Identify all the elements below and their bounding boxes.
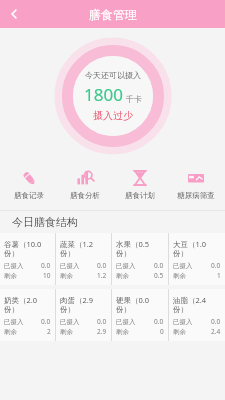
button[interactable]: 肉蛋（2.9份） [56,289,111,341]
button[interactable]: 奶类（2.0份） [0,289,55,341]
staticText: 摄入过少 [93,109,133,122]
staticText: 已摄入 [4,262,24,270]
staticText: 0.5 [154,271,164,280]
staticText: 油脂（2.4份） [173,295,221,314]
staticText: 0 [160,327,164,336]
staticText: 水果（0.5份） [116,239,164,258]
staticText: 已摄入 [116,318,136,326]
staticText: 1.2 [97,271,107,280]
staticText: 0.0 [41,317,51,326]
staticText: 已摄入 [4,318,24,326]
staticText: 膳食管理 [89,7,137,22]
staticText: 2 [47,327,51,336]
button[interactable]: 蔬菜（1.2份） [56,233,111,285]
staticText: 今日膳食结构 [12,215,78,229]
staticText: 剩余 [4,328,17,336]
button[interactable]: 硬果（0.0份） [112,289,168,341]
button[interactable]: 膳食记录 [2,166,56,202]
staticText: 已摄入 [173,318,193,326]
button[interactable]: 膳食计划 [113,166,167,202]
staticText: 今天还可以摄入 [85,70,141,80]
button[interactable]: 水果（0.5份） [112,233,168,285]
staticText: 糖尿病筛查 [177,191,215,200]
staticText: 已摄入 [60,262,80,270]
staticText: 膳食计划 [125,191,155,200]
staticText: 膳食记录 [14,191,44,200]
staticText: 剩余 [116,328,129,336]
button[interactable]: 油脂（2.4份） [169,289,225,341]
staticText: 大豆（1.0份） [173,239,221,258]
staticText: 0.0 [154,317,164,326]
staticText: 奶类（2.0份） [4,295,51,314]
staticText: 0.0 [211,261,221,270]
staticText: 已摄入 [116,262,136,270]
staticText: 剩余 [60,328,73,336]
staticText: 1800 [84,83,123,106]
staticText: 剩余 [173,272,186,280]
staticText: 蔬菜（1.2份） [60,239,107,258]
button[interactable]: 谷薯（10.0份） [0,233,55,285]
staticText: 1 [217,271,221,280]
staticText: 已摄入 [173,262,193,270]
staticText: 0.0 [154,261,164,270]
button[interactable]: 糖尿病筛查 [169,166,223,202]
button[interactable]: 膳食分析 [58,166,112,202]
staticText: 0.0 [97,261,107,270]
staticText: 0.0 [41,261,51,270]
staticText: 0.0 [211,317,221,326]
button[interactable]: 大豆（1.0份） [169,233,225,285]
staticText: 已摄入 [60,318,80,326]
staticText: 10 [43,271,51,280]
button[interactable]: Back [0,0,28,28]
staticText: 千卡 [126,94,142,104]
staticText: 膳食分析 [70,191,100,200]
staticText: 0.0 [97,317,107,326]
staticText: 谷薯（10.0份） [4,239,51,258]
staticText: 硬果（0.0份） [116,295,164,314]
staticText: 肉蛋（2.9份） [60,295,107,314]
staticText: 2.4 [211,327,221,336]
staticText: 剩余 [173,328,186,336]
staticText: 2.9 [97,327,107,336]
staticText: 剩余 [60,272,73,280]
staticText: 剩余 [116,272,129,280]
staticText: 剩余 [4,272,17,280]
